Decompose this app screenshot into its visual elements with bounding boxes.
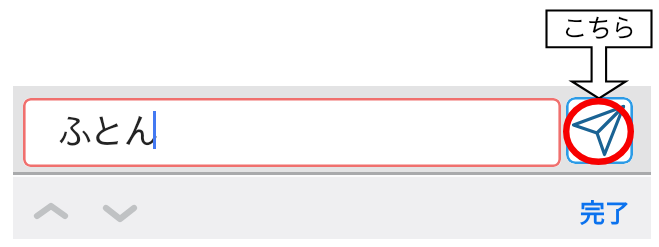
button[interactable]: [23, 98, 561, 167]
staticText: ふとん: [57, 105, 157, 155]
staticText: こちら: [562, 9, 636, 45]
staticText: 完了: [580, 193, 631, 229]
button[interactable]: 完了: [572, 186, 638, 236]
button[interactable]: Next candidate: [92, 191, 148, 229]
button[interactable]: Send: [566, 97, 633, 164]
button[interactable]: Previous candidate: [23, 191, 79, 229]
